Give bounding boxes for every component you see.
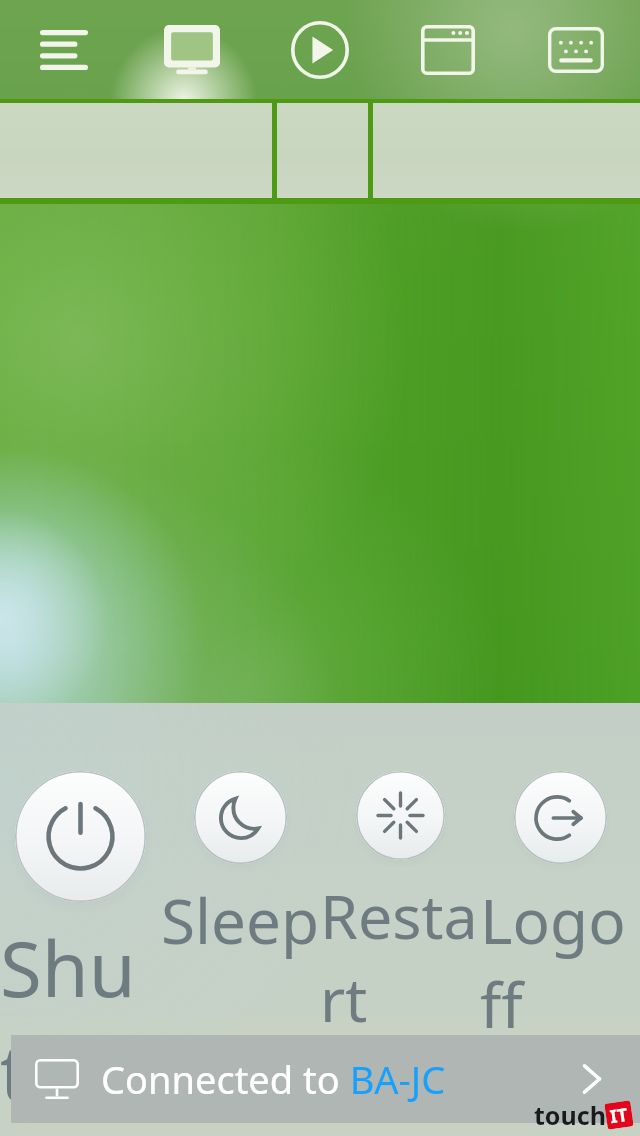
button[interactable]: Shutdown [0, 771, 160, 1136]
staticText: touch [534, 1098, 606, 1132]
staticText: Sleep [161, 878, 320, 962]
button[interactable]: Logoff [480, 771, 640, 1046]
staticText: Logoff [480, 878, 640, 1046]
staticText: Connected to BA-JC [101, 1053, 446, 1105]
button[interactable]: Connected to BA-JC [11, 1035, 640, 1123]
button[interactable]: Desktop [128, 0, 256, 99]
button[interactable]: Windows [384, 0, 512, 99]
button[interactable]: Restart [320, 771, 480, 1040]
button[interactable]: Sleep [160, 771, 320, 962]
staticText: IT [608, 1102, 630, 1129]
button[interactable]: Menu [0, 0, 128, 99]
button[interactable]: Keyboard [512, 0, 640, 99]
staticText: Shutdown [0, 916, 160, 1136]
button[interactable]: Play [256, 0, 384, 99]
staticText: Restart [320, 874, 480, 1040]
other: Open connection details [570, 1057, 614, 1101]
